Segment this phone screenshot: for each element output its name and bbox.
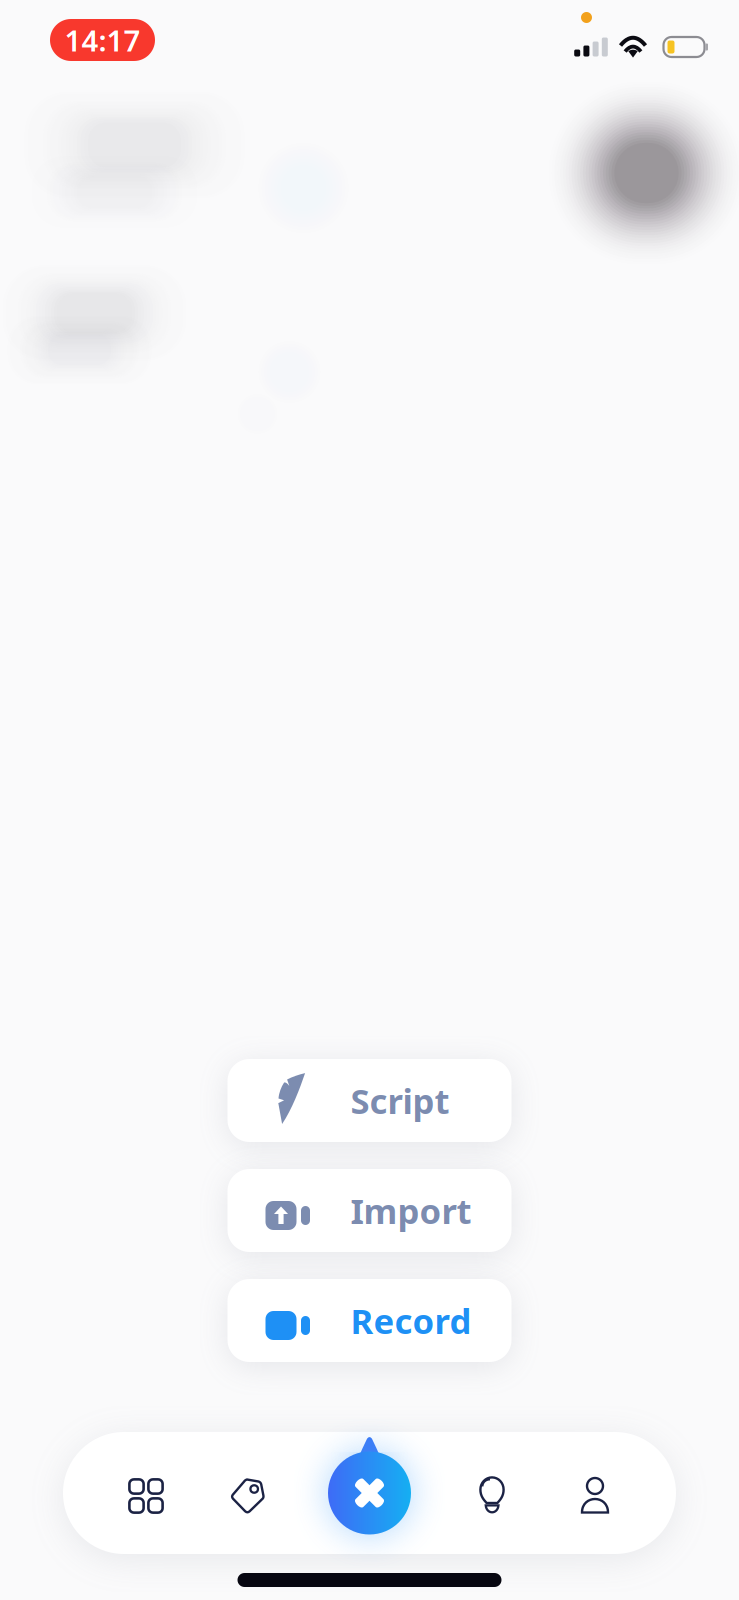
- staticText: Record: [350, 1297, 471, 1343]
- button[interactable]: Script: [227, 1059, 511, 1142]
- button[interactable]: Record: [227, 1279, 511, 1362]
- button[interactable]: Projects: [63, 1432, 197, 1554]
- button[interactable]: Ideas: [420, 1432, 542, 1554]
- button[interactable]: Import: [227, 1169, 511, 1252]
- button[interactable]: Close: [309, 1433, 429, 1553]
- button[interactable]: Profile: [542, 1432, 676, 1554]
- staticText: Script: [350, 1077, 449, 1123]
- staticText: 14:17: [64, 20, 140, 59]
- staticText: Import: [350, 1187, 471, 1233]
- button[interactable]: Tags: [197, 1432, 299, 1554]
